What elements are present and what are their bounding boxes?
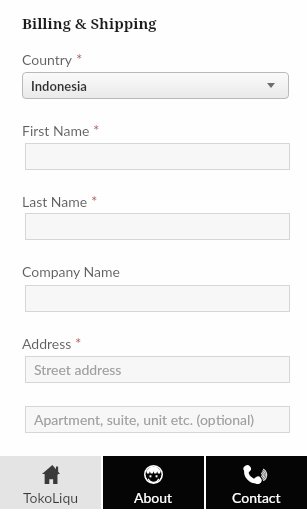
staticText: Apartment, suite, unit etc. (optional) <box>34 411 255 428</box>
button[interactable]: About <box>103 456 204 509</box>
staticText: First Name <box>22 122 90 139</box>
staticText: Contact <box>232 489 281 506</box>
staticText: * <box>75 334 82 352</box>
button[interactable]: Apartment, suite, unit etc. (optional) <box>25 406 290 433</box>
staticText: Street address <box>34 361 122 378</box>
staticText: Company Name <box>22 263 120 280</box>
button[interactable]: Street address <box>25 356 290 383</box>
staticText: Address <box>22 335 72 352</box>
staticText: * <box>76 50 83 68</box>
staticText: About <box>134 489 173 506</box>
staticText: * <box>93 121 100 139</box>
staticText: Last Name <box>22 193 88 210</box>
button[interactable] <box>25 213 290 240</box>
staticText: Indonesia <box>31 78 87 94</box>
button[interactable]: Indonesia <box>22 72 289 99</box>
staticText: TokoLiqu <box>23 489 79 506</box>
button[interactable]: Contact <box>206 456 307 509</box>
staticText: Billing & Shipping <box>22 13 157 33</box>
staticText: Country <box>22 51 73 68</box>
button[interactable] <box>25 285 290 312</box>
button[interactable] <box>25 143 290 170</box>
button[interactable]: TokoLiqu <box>0 456 101 509</box>
staticText: * <box>91 192 98 210</box>
